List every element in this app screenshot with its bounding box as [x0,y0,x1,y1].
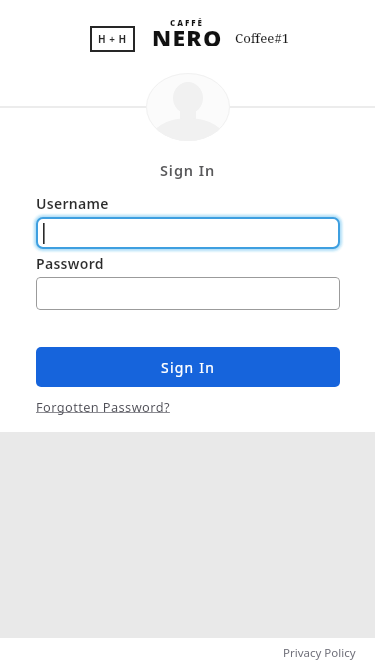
staticText: H + H [98,32,127,46]
staticText: Password [36,254,104,273]
staticText: Sign In [161,358,215,377]
button[interactable]: Sign In [36,347,340,387]
button[interactable]: Forgotten Password? [36,398,170,415]
button[interactable] [36,214,340,252]
staticText: Coffee#1 [235,29,289,47]
button[interactable] [36,277,340,310]
staticText: Sign In [160,160,216,180]
staticText: Forgotten Password? [36,398,170,415]
staticText: CAFFÈ [170,17,205,28]
staticText: NERO [152,22,223,46]
staticText: Privacy Policy [283,645,356,661]
staticText: Username [36,194,109,213]
button[interactable]: Privacy Policy [283,645,356,661]
